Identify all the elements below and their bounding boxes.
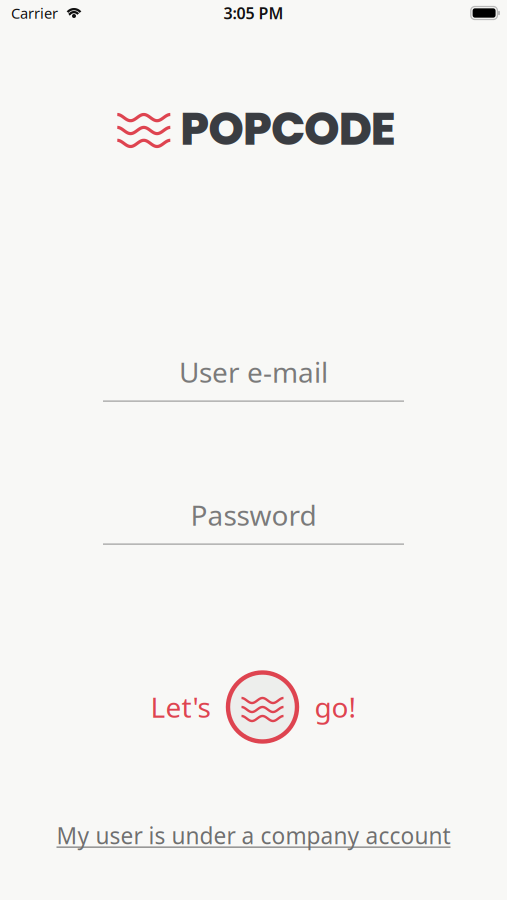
button[interactable]: My user is under a company account — [56, 820, 450, 850]
staticText: User e-mail — [179, 353, 328, 391]
button[interactable]: User e-mail — [88, 361, 418, 394]
button[interactable]: Let's — [150, 670, 356, 744]
staticText: My user is under a company account — [56, 820, 450, 850]
staticText: go! — [314, 688, 356, 726]
staticText: Let's — [150, 688, 210, 726]
staticText: Carrier — [11, 3, 58, 23]
staticText: Password — [190, 496, 316, 534]
staticText: 3:05 PM — [223, 2, 283, 24]
button[interactable]: Password — [88, 504, 418, 537]
staticText: POPCODE — [180, 97, 396, 161]
